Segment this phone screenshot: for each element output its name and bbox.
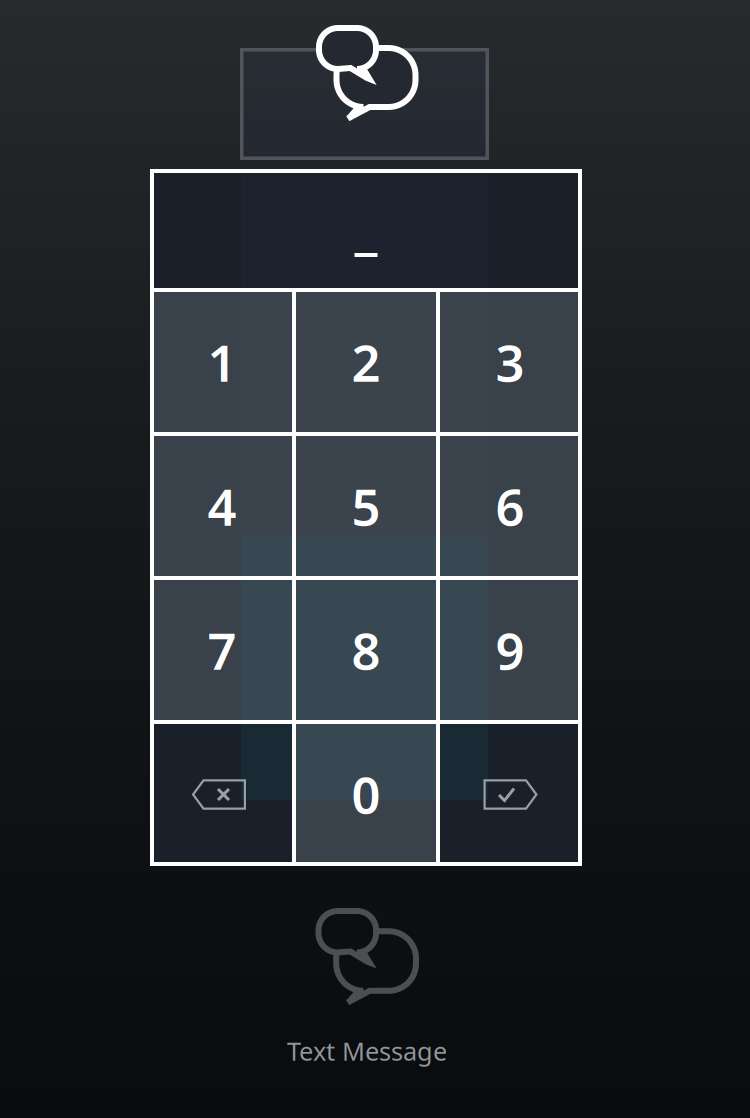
staticText: 1 xyxy=(207,328,236,396)
staticText: 7 xyxy=(207,616,236,684)
button[interactable]: 6 xyxy=(438,434,582,578)
button[interactable]: Confirm xyxy=(438,722,582,866)
staticText: 3 xyxy=(495,328,524,396)
button[interactable]: 1 xyxy=(150,290,294,434)
button[interactable]: Delete xyxy=(150,722,294,866)
button[interactable]: 0 xyxy=(294,722,438,866)
button[interactable]: 2 xyxy=(294,290,438,434)
staticText: 6 xyxy=(495,472,524,540)
staticText: 5 xyxy=(351,472,380,540)
staticText: 0 xyxy=(351,760,380,828)
staticText: 4 xyxy=(207,472,236,540)
button[interactable]: 7 xyxy=(150,578,294,722)
staticText: 8 xyxy=(351,616,380,684)
button[interactable]: 5 xyxy=(294,434,438,578)
staticText: Text Message xyxy=(287,1034,447,1068)
button[interactable]: 9 xyxy=(438,578,582,722)
button[interactable]: 4 xyxy=(150,434,294,578)
button[interactable]: 8 xyxy=(294,578,438,722)
staticText: 9 xyxy=(495,616,524,684)
staticText: 2 xyxy=(351,328,380,396)
button[interactable]: 3 xyxy=(438,290,582,434)
